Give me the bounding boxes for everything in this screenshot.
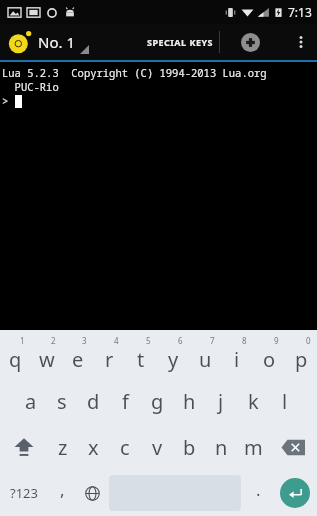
staticText: w [39,346,55,373]
staticText: k [248,388,259,415]
button[interactable]: 4 [93,330,125,378]
staticText: l [282,388,288,415]
button[interactable]: 0 [285,330,317,378]
staticText: x [88,434,99,461]
button[interactable]: 7 [189,330,221,378]
button[interactable]: 1 [0,330,31,378]
staticText: > [2,94,15,108]
staticText: o [263,346,276,373]
button[interactable]: m [237,424,269,470]
button[interactable]: Add [232,24,268,60]
button[interactable]: h [173,378,205,424]
staticText: , [60,478,65,501]
staticText: m [244,434,263,461]
staticText: t [137,346,145,373]
staticText: v [152,434,163,461]
button[interactable]: More options [285,26,317,58]
staticText: z [58,434,68,461]
staticText: g [151,388,164,415]
staticText: 5 [146,335,151,346]
staticText: 0 [306,335,311,346]
staticText: a [25,388,37,415]
button[interactable]: a [15,378,46,424]
staticText: d [87,388,100,415]
button[interactable]: 6 [157,330,189,378]
button[interactable]: ?123 [0,470,47,516]
staticText: s [57,388,67,415]
button[interactable]: Lua 5.2.3 Copyright (C) 1994-2013 Lua.or… [0,62,317,330]
staticText: Lua 5.2.3 Copyright (C) 1994-2013 Lua.or… [2,66,267,80]
button[interactable]: z [47,424,78,470]
button[interactable]: . [243,470,273,516]
staticText: 4 [114,335,119,346]
button[interactable]: v [141,424,173,470]
staticText: 7:13 [288,4,312,20]
button[interactable]: Change keyboard language [77,470,107,516]
button[interactable]: x [78,424,109,470]
button[interactable]: s [46,378,77,424]
button[interactable]: b [173,424,205,470]
button[interactable]: n [205,424,237,470]
staticText: b [183,434,196,461]
staticText: 2 [51,335,56,346]
staticText: u [199,346,212,373]
button[interactable]: f [109,378,141,424]
staticText: q [9,346,22,373]
button[interactable]: k [237,378,269,424]
staticText: 7 [210,335,215,346]
button[interactable]: 8 [221,330,253,378]
staticText: y [168,346,179,373]
button[interactable]: 3 [62,330,93,378]
button[interactable]: c [109,424,141,470]
button[interactable]: l [269,378,301,424]
staticText: 6 [178,335,183,346]
staticText: i [234,346,240,373]
staticText: p [295,346,308,373]
staticText: No. 1 [38,32,75,52]
staticText: ?123 [10,484,38,502]
staticText: r [105,346,114,373]
staticText: PUC-Rio [2,80,59,94]
button[interactable]: Shift [0,424,47,470]
staticText: c [120,434,130,461]
staticText: . [256,478,261,501]
staticText: h [183,388,196,415]
button[interactable]: No. 1 [0,28,97,56]
button[interactable]: d [77,378,109,424]
button[interactable]: 2 [31,330,62,378]
staticText: n [215,434,228,461]
staticText: e [72,346,84,373]
button[interactable]: Enter [280,478,310,508]
button[interactable]: , [47,470,77,516]
staticText: 1 [20,335,25,346]
button[interactable]: g [141,378,173,424]
staticText: 8 [242,335,247,346]
button[interactable]: j [205,378,237,424]
staticText: f [122,388,129,415]
button[interactable]: 9 [253,330,285,378]
staticText: j [218,388,224,415]
staticText: 9 [274,335,279,346]
button[interactable]: SPECIAL KEYS [140,28,221,56]
button[interactable]: 5 [125,330,157,378]
staticText: SPECIAL KEYS [147,36,214,48]
button[interactable]: Backspace [269,424,317,470]
staticText: 3 [82,335,87,346]
